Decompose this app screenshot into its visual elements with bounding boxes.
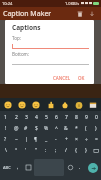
button[interactable]: 3 [21,112,31,123]
button[interactable]: , [13,156,23,179]
button[interactable]: Emoji [30,99,42,111]
staticText: ^ [55,125,58,132]
button[interactable]: CANCEL [51,74,73,82]
staticText: Captions [12,23,41,32]
button[interactable]: ( [81,123,91,134]
staticText: ? [4,136,7,143]
button[interactable]: Delete [74,8,86,20]
button[interactable]: ~ [11,134,21,145]
button[interactable]: ° [11,145,21,156]
button[interactable]: - [51,134,61,145]
button[interactable]: ; [51,145,61,156]
button[interactable]: ) [91,123,101,134]
staticText: _ [45,136,48,143]
button[interactable] [12,58,89,65]
button[interactable]: × [71,134,81,145]
button[interactable]: @ [11,123,21,134]
button[interactable]: ^ [51,123,61,134]
button[interactable]: Emoji [45,99,57,111]
button[interactable]: ! [0,123,11,134]
button[interactable]: Emoji [73,99,85,111]
staticText: 4 [35,114,38,121]
staticText: 2 [15,114,18,121]
button[interactable]: | [21,134,31,145]
staticText: } [85,147,87,154]
button[interactable]: 9 [81,112,91,123]
staticText: % [44,125,49,132]
staticText: ° [15,147,18,154]
staticText: 7 [65,114,68,121]
button[interactable] [12,42,89,49]
button[interactable]: ¶ [31,134,41,145]
button[interactable]: / [61,145,71,156]
staticText: Top: [12,35,21,41]
staticText: ; [55,147,57,154]
button[interactable]: 1 [0,112,11,123]
staticText: | [25,136,28,143]
button[interactable]: Backspace [91,145,101,156]
staticText: { [75,147,77,154]
staticText: - [55,136,57,143]
staticText: ! [5,125,7,132]
button[interactable]: 2 [11,112,21,123]
button[interactable]: 5 [41,112,51,123]
button[interactable]: ÷ [81,134,91,145]
staticText: / [65,147,67,154]
button[interactable]: Emoji [2,99,14,111]
button[interactable]: Emoji [87,99,99,111]
button[interactable]: " [31,145,41,156]
staticText: 5 [45,114,48,121]
staticText: + [65,136,68,143]
button[interactable]: 6 [51,112,61,123]
button[interactable]: Emoji [16,99,28,111]
button[interactable]: ABC [0,156,13,179]
staticText: Bottom: [12,51,30,57]
button[interactable]: 4 [31,112,41,123]
staticText: ÷ [85,136,88,143]
button[interactable]: Keyboard settings [23,156,33,179]
staticText: ) [95,125,97,132]
staticText: 6 [55,114,58,121]
staticText: × [75,136,78,143]
staticText: 1 [4,114,7,121]
button[interactable]: ? [0,134,11,145]
button[interactable]: . [75,156,85,179]
button[interactable]: % [41,123,51,134]
button[interactable]: { [71,145,81,156]
button[interactable]: _ [41,134,51,145]
staticText: # [24,125,28,132]
button[interactable]: Download [86,8,98,20]
button[interactable]: : [41,145,51,156]
button[interactable]: 7 [61,112,71,123]
button[interactable]: ' [21,145,31,156]
button[interactable]: 0 [91,112,101,123]
staticText: ~ [15,136,18,143]
button[interactable]: & [61,123,71,134]
button[interactable]: = [91,134,101,145]
staticText: = [95,136,98,143]
button[interactable]: OK [76,74,87,82]
button[interactable]: Emoji [65,156,75,179]
staticText: 0 [95,114,98,121]
button[interactable]: Emoji [59,99,71,111]
button[interactable]: 8 [71,112,81,123]
staticText: & [64,125,68,132]
staticText: CANCEL [53,75,71,81]
staticText: $ [35,125,38,132]
button[interactable]: $ [31,123,41,134]
button[interactable]: } [81,145,91,156]
button[interactable]: * [71,123,81,134]
button[interactable]: + [61,134,71,145]
staticText: @ [14,125,19,132]
staticText: 1.0KB/s [65,1,80,6]
button[interactable]: \ [0,145,11,156]
staticText: ( [85,125,87,132]
staticText: 9 [85,114,88,121]
staticText: ABC [3,165,11,170]
staticText: : [45,147,47,154]
staticText: ' [25,147,27,154]
button[interactable]: Enter [88,163,98,173]
staticText: " [35,147,38,154]
button[interactable]: # [21,123,31,134]
